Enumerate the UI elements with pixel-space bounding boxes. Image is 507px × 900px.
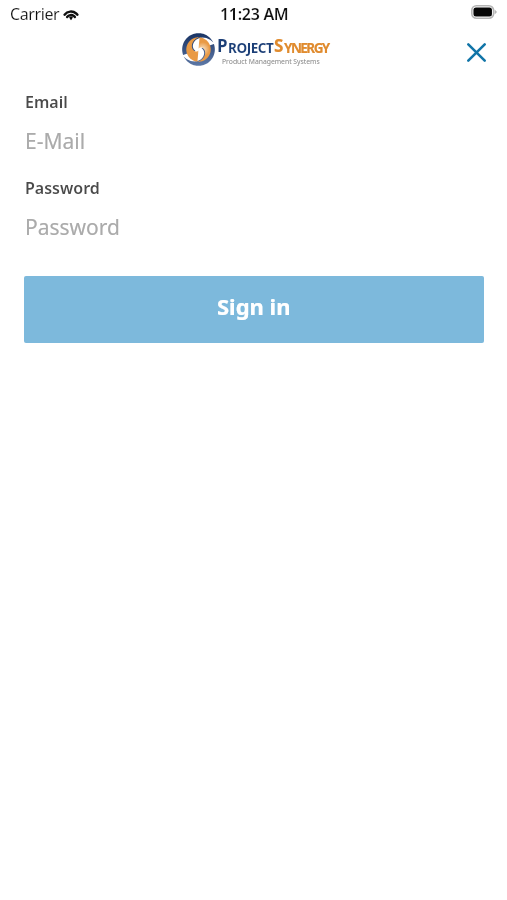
staticText: 11:23 AM: [220, 3, 289, 25]
button[interactable]: Password input field: [0, 209, 507, 245]
button[interactable]: E-Mail input field: [0, 123, 507, 159]
other: Project Synergy logo: [182, 33, 215, 66]
staticText: Sign in: [217, 291, 291, 321]
staticText: S: [274, 34, 284, 57]
staticText: Password: [25, 213, 120, 242]
staticText: P: [217, 34, 228, 57]
staticText: E-Mail: [25, 127, 86, 156]
staticText: Product Management Systems: [222, 57, 320, 66]
staticText: Email: [25, 91, 68, 113]
staticText: Password: [25, 177, 100, 199]
staticText: Carrier: [10, 3, 60, 25]
button[interactable]: Sign in: [24, 276, 484, 343]
staticText: ROJECT: [228, 39, 274, 57]
staticText: YNERGY: [284, 39, 329, 57]
button[interactable]: Close: [454, 30, 498, 74]
